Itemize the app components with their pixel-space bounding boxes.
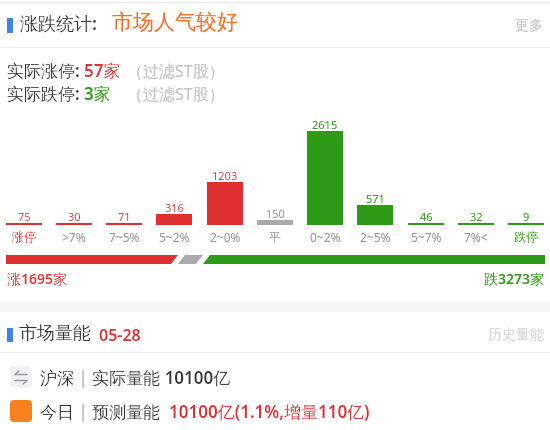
staticText: 2~5% bbox=[360, 229, 391, 245]
staticText: 涨跌统计: bbox=[20, 11, 97, 36]
button[interactable]: 今日 | 预测量能 10100亿(1.1%,增量110亿) bbox=[0, 396, 550, 426]
staticText: 71 bbox=[118, 209, 131, 224]
staticText: 46 bbox=[420, 209, 433, 224]
button[interactable]: 沪深 | 实际量能 10100亿 bbox=[0, 362, 550, 392]
staticText: 75 bbox=[18, 209, 31, 224]
staticText: 150 bbox=[266, 206, 285, 221]
staticText: 0~2% bbox=[310, 229, 341, 245]
staticText: 涨停 bbox=[12, 229, 36, 244]
staticText: 7~5% bbox=[109, 229, 140, 245]
staticText: 市场人气较好 bbox=[112, 9, 238, 35]
staticText: 市场量能 bbox=[19, 322, 91, 345]
staticText: 今日 | 预测量能 10100亿(1.1%,增量110亿) bbox=[40, 400, 370, 423]
staticText: 571 bbox=[366, 191, 385, 206]
staticText: 316 bbox=[165, 200, 184, 215]
staticText: 2615 bbox=[312, 117, 338, 132]
staticText: 更多 bbox=[515, 17, 543, 35]
staticText: 05-28 bbox=[99, 324, 141, 346]
staticText: 5~2% bbox=[159, 229, 190, 245]
staticText: 历史量能 bbox=[488, 326, 544, 344]
staticText: 32 bbox=[470, 209, 483, 224]
staticText: （过滤ST股） bbox=[127, 83, 225, 105]
staticText: 跌3273家 bbox=[484, 269, 545, 288]
button[interactable]: 历史量能 bbox=[464, 325, 544, 345]
staticText: 5~7% bbox=[411, 229, 442, 245]
button[interactable]: 更多 bbox=[463, 14, 543, 38]
staticText: （过滤ST股） bbox=[127, 60, 225, 82]
staticText: 2~0% bbox=[210, 229, 241, 245]
staticText: 1203 bbox=[212, 168, 238, 183]
staticText: 平 bbox=[269, 229, 281, 244]
staticText: 涨1695家 bbox=[7, 269, 68, 288]
staticText: >7% bbox=[62, 229, 86, 245]
staticText: 7%< bbox=[464, 229, 488, 245]
staticText: 沪深 | 实际量能 10100亿 bbox=[40, 366, 231, 389]
staticText: 9 bbox=[523, 209, 530, 224]
staticText: 实际涨停: 57家 bbox=[7, 59, 121, 82]
staticText: 30 bbox=[68, 209, 81, 224]
staticText: 跌停 bbox=[514, 229, 538, 244]
staticText: 实际跌停: 3家 bbox=[7, 82, 111, 105]
